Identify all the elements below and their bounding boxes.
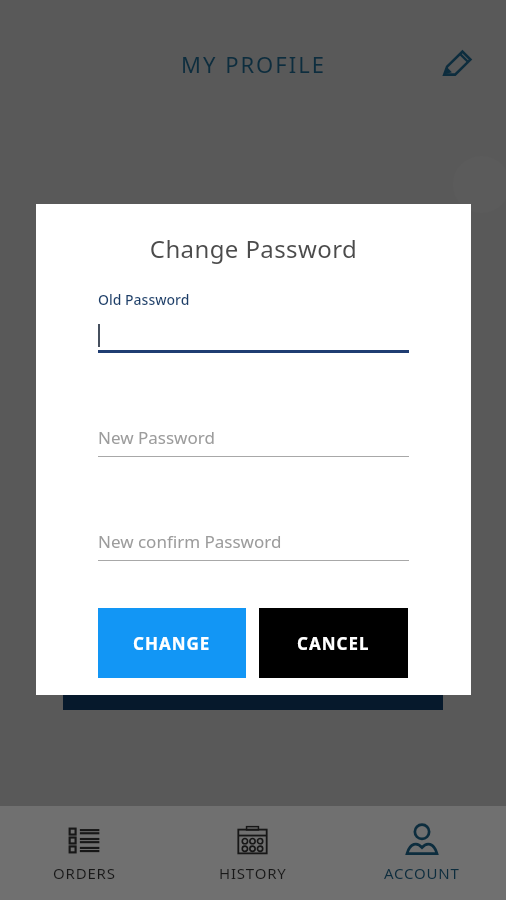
button[interactable]: Edit profile [434,42,480,88]
staticText: CANCEL [297,632,370,655]
button[interactable]: New Password [98,426,409,457]
staticText: New Password [98,426,215,449]
staticText: Old Password [98,290,190,309]
staticText: ORDERS [53,863,116,883]
button[interactable]: New confirm Password [98,530,409,561]
staticText: CHANGE [133,632,211,655]
staticText: Change Password [36,232,471,265]
staticText: MY PROFILE [181,49,326,79]
staticText: HISTORY [219,863,287,883]
button[interactable]: Profile photo [453,156,506,213]
button[interactable]: CANCEL [259,608,408,678]
button[interactable] [63,642,443,710]
button[interactable]: HISTORY [168,806,337,900]
button[interactable]: ORDERS [0,806,168,900]
button[interactable]: CHANGE [98,608,246,678]
button[interactable]: ACCOUNT [337,806,506,900]
staticText: ACCOUNT [384,863,460,883]
button[interactable] [98,320,409,350]
staticText: New confirm Password [98,530,282,553]
